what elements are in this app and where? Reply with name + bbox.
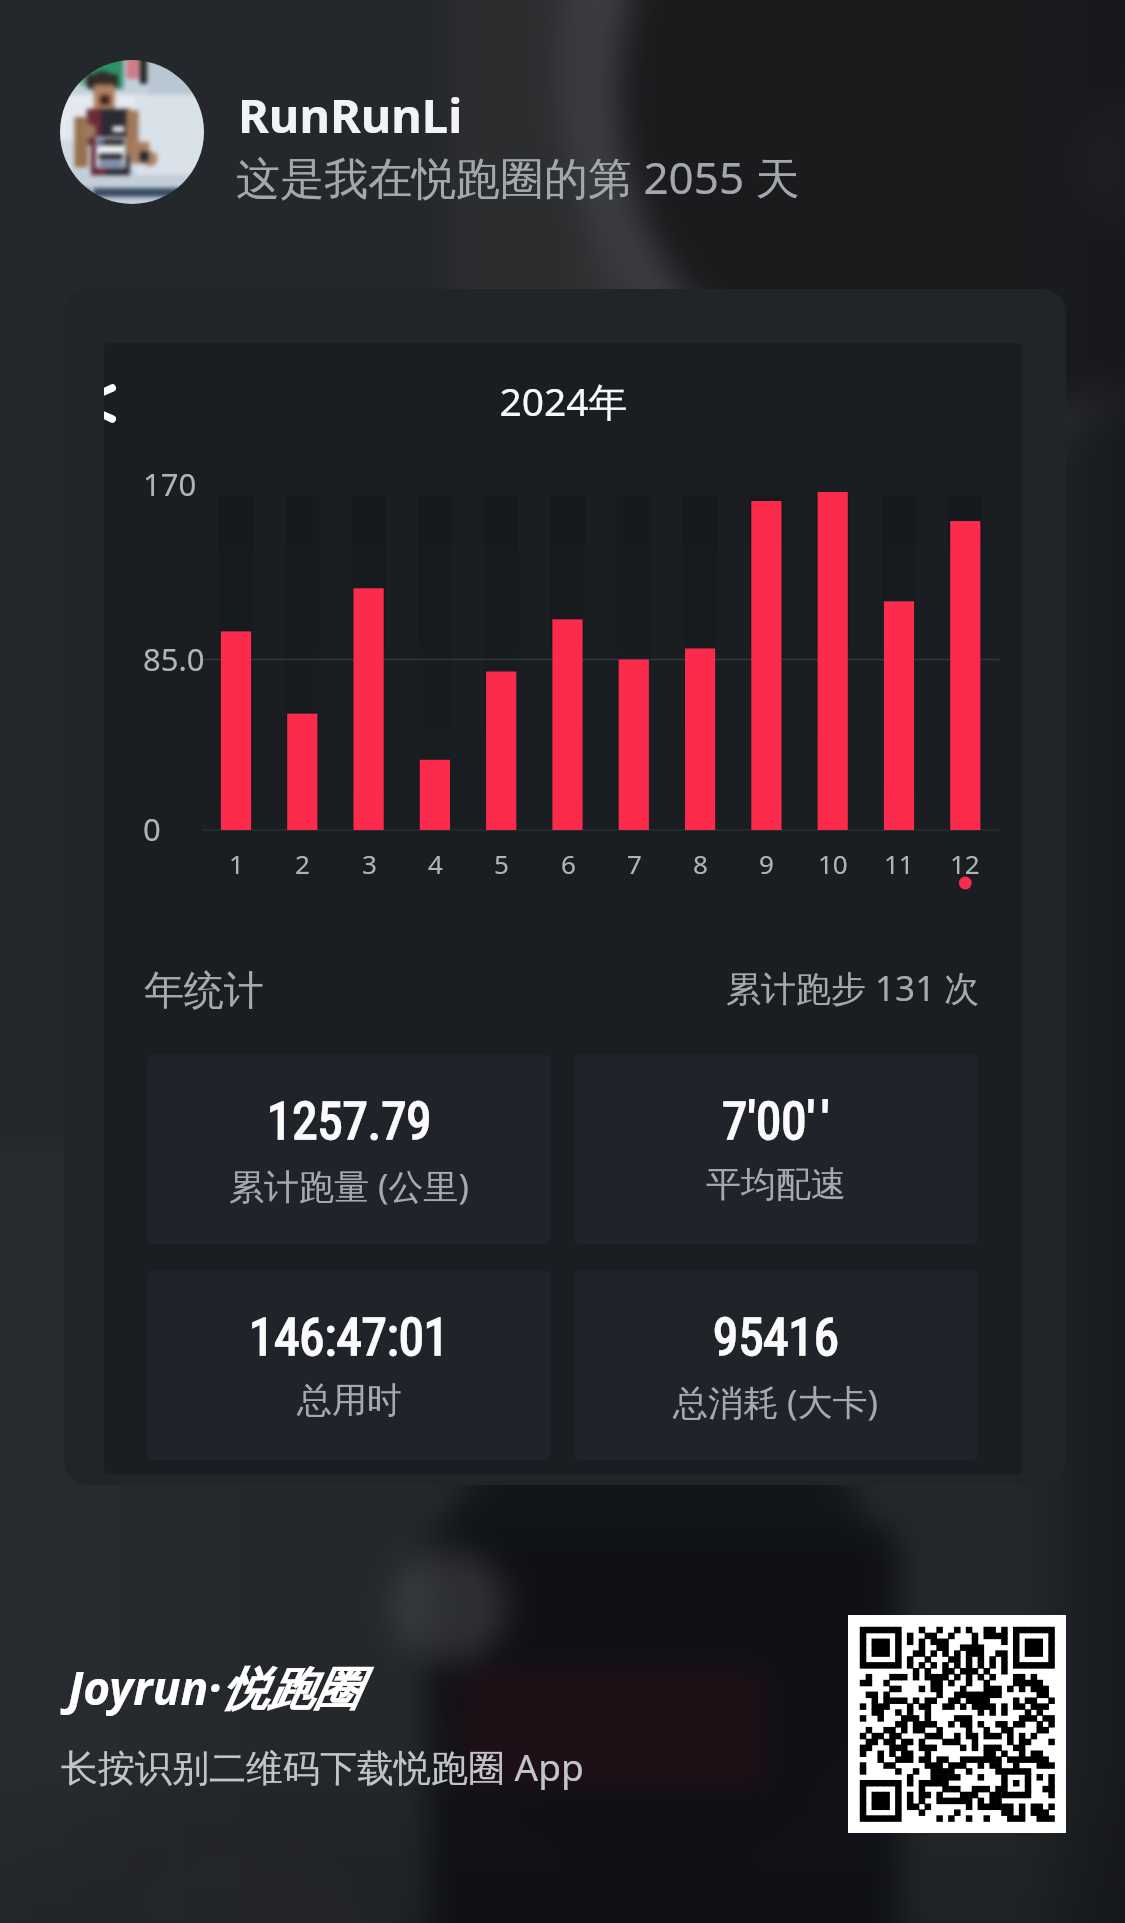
staticText: 6 xyxy=(561,846,576,881)
staticText: 7 xyxy=(627,846,642,881)
staticText: 4 xyxy=(428,846,443,881)
staticText: 总消耗 (大卡) xyxy=(673,1378,879,1426)
staticText: 这是我在悦跑圈的第 2055 天 xyxy=(236,147,800,207)
staticText: 12 xyxy=(950,846,980,881)
staticText: 95416 xyxy=(713,1308,839,1368)
button[interactable]: 7'00' ' xyxy=(574,1054,978,1244)
staticText: 1 xyxy=(229,846,244,881)
button[interactable]: Profile photo xyxy=(60,60,204,204)
staticText: 年统计 xyxy=(144,965,264,1015)
staticText: 2 xyxy=(295,846,310,881)
staticText: 累计跑步 131 次 xyxy=(726,964,980,1012)
staticText: 10 xyxy=(818,846,848,881)
staticText: 5 xyxy=(494,846,509,881)
button[interactable]: 95416 xyxy=(574,1270,978,1460)
staticText: 9 xyxy=(759,846,774,881)
staticText: 2024年 xyxy=(499,374,628,427)
staticText: 8 xyxy=(693,846,708,881)
staticText: 85.0 xyxy=(143,638,205,680)
button[interactable]: 146:47:01 xyxy=(147,1270,551,1460)
staticText: 总用时 xyxy=(297,1378,402,1422)
button[interactable]: Joyrun·悦跑圈 xyxy=(68,1656,360,1719)
staticText: 累计跑量 (公里) xyxy=(229,1162,470,1210)
staticText: 7'00' ' xyxy=(722,1092,830,1152)
staticText: 平均配速 xyxy=(706,1162,846,1206)
staticText: 3 xyxy=(362,846,377,881)
staticText: 1257.79 xyxy=(267,1092,432,1152)
staticText: 11 xyxy=(884,846,914,881)
staticText: Joyrun·悦跑圈 xyxy=(68,1656,360,1719)
staticText: 146:47:01 xyxy=(249,1308,450,1368)
button[interactable]: QR code to download app xyxy=(848,1615,1066,1833)
button[interactable]: 1257.79 xyxy=(147,1054,551,1244)
staticText: 0 xyxy=(143,808,161,850)
staticText: RunRunLi xyxy=(238,83,463,147)
button[interactable]: Previous year xyxy=(104,388,113,419)
staticText: 长按识别二维码下载悦跑圈 App xyxy=(61,1741,584,1792)
staticText: 170 xyxy=(143,463,197,505)
